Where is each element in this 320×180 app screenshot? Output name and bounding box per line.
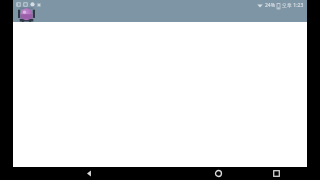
staticText: 24% xyxy=(265,2,275,9)
button[interactable]: Home xyxy=(207,167,229,180)
button[interactable]: App icon xyxy=(18,7,35,22)
staticText: 오후 1:23 xyxy=(282,2,304,9)
button[interactable]: Back xyxy=(78,167,100,180)
button[interactable]: Recent apps xyxy=(265,167,287,180)
